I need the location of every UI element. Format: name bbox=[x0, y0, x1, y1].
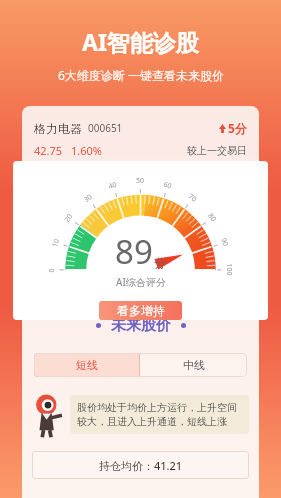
button[interactable]: 看多增持 bbox=[99, 301, 182, 320]
staticText: 42.75 bbox=[34, 143, 63, 158]
button[interactable]: 中线 bbox=[140, 353, 247, 377]
staticText: 持仓均价：41.21 bbox=[99, 458, 183, 473]
staticText: 000651 bbox=[88, 121, 123, 135]
staticText: 未来股价 bbox=[111, 316, 171, 335]
staticText: 看多增持 bbox=[117, 303, 165, 318]
staticText: 股价均处于均价上方运行，上升空间较大，且进入上升通道，短线上涨 bbox=[77, 401, 242, 428]
staticText: 89 bbox=[115, 229, 153, 274]
staticText: 1.60% bbox=[71, 143, 102, 158]
staticText: 中线 bbox=[183, 358, 205, 372]
staticText: AI智能诊股 bbox=[82, 26, 199, 57]
button[interactable]: 格力电器 bbox=[34, 120, 247, 136]
staticText: AI综合评分 bbox=[116, 275, 166, 289]
staticText: 分 bbox=[154, 255, 166, 270]
staticText: 格力电器 bbox=[34, 121, 82, 136]
staticText: 较上一交易日 bbox=[187, 144, 247, 157]
staticText: 5分 bbox=[228, 120, 247, 136]
button[interactable]: 短线 bbox=[34, 353, 140, 377]
staticText: 6大维度诊断 一键查看未来股价 bbox=[58, 67, 224, 83]
staticText: 短线 bbox=[76, 358, 98, 372]
